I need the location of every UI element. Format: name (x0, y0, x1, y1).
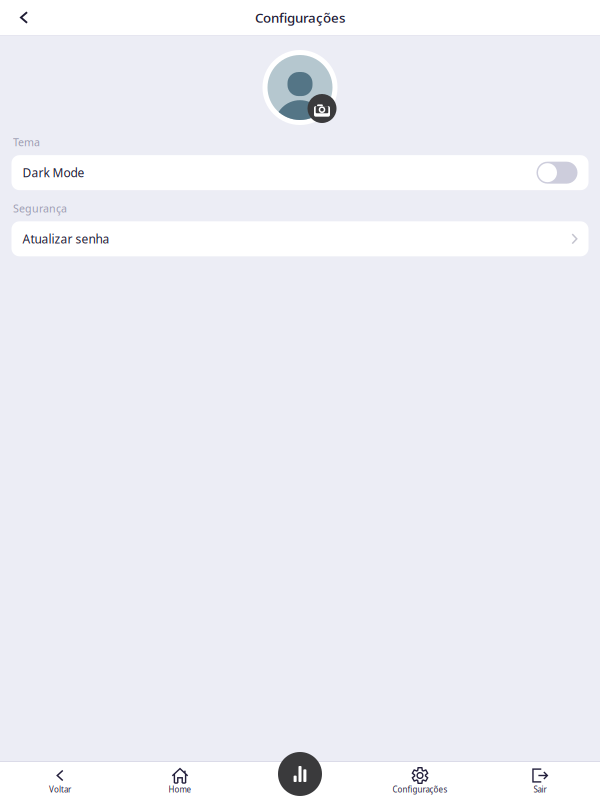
staticText: Voltar (49, 784, 71, 795)
button[interactable]: Voltar (0, 0, 48, 35)
staticText: Sair (533, 784, 546, 795)
staticText: Configurações (255, 9, 345, 26)
staticText: Tema (13, 135, 40, 149)
staticText: Atualizar senha (22, 231, 109, 247)
button[interactable]: Configurações (360, 762, 480, 800)
staticText: Dark Mode (22, 165, 84, 181)
button[interactable]: Home (120, 762, 240, 800)
button[interactable]: Estatísticas (278, 752, 322, 796)
staticText: Home (168, 784, 191, 795)
button[interactable]: Voltar (0, 762, 120, 800)
staticText: Segurança (13, 201, 67, 215)
button[interactable]: Sair (480, 762, 600, 800)
button[interactable]: Atualizar senha (0, 221, 600, 256)
button[interactable]: Dark Mode (536, 162, 577, 184)
staticText: Configurações (392, 784, 447, 795)
